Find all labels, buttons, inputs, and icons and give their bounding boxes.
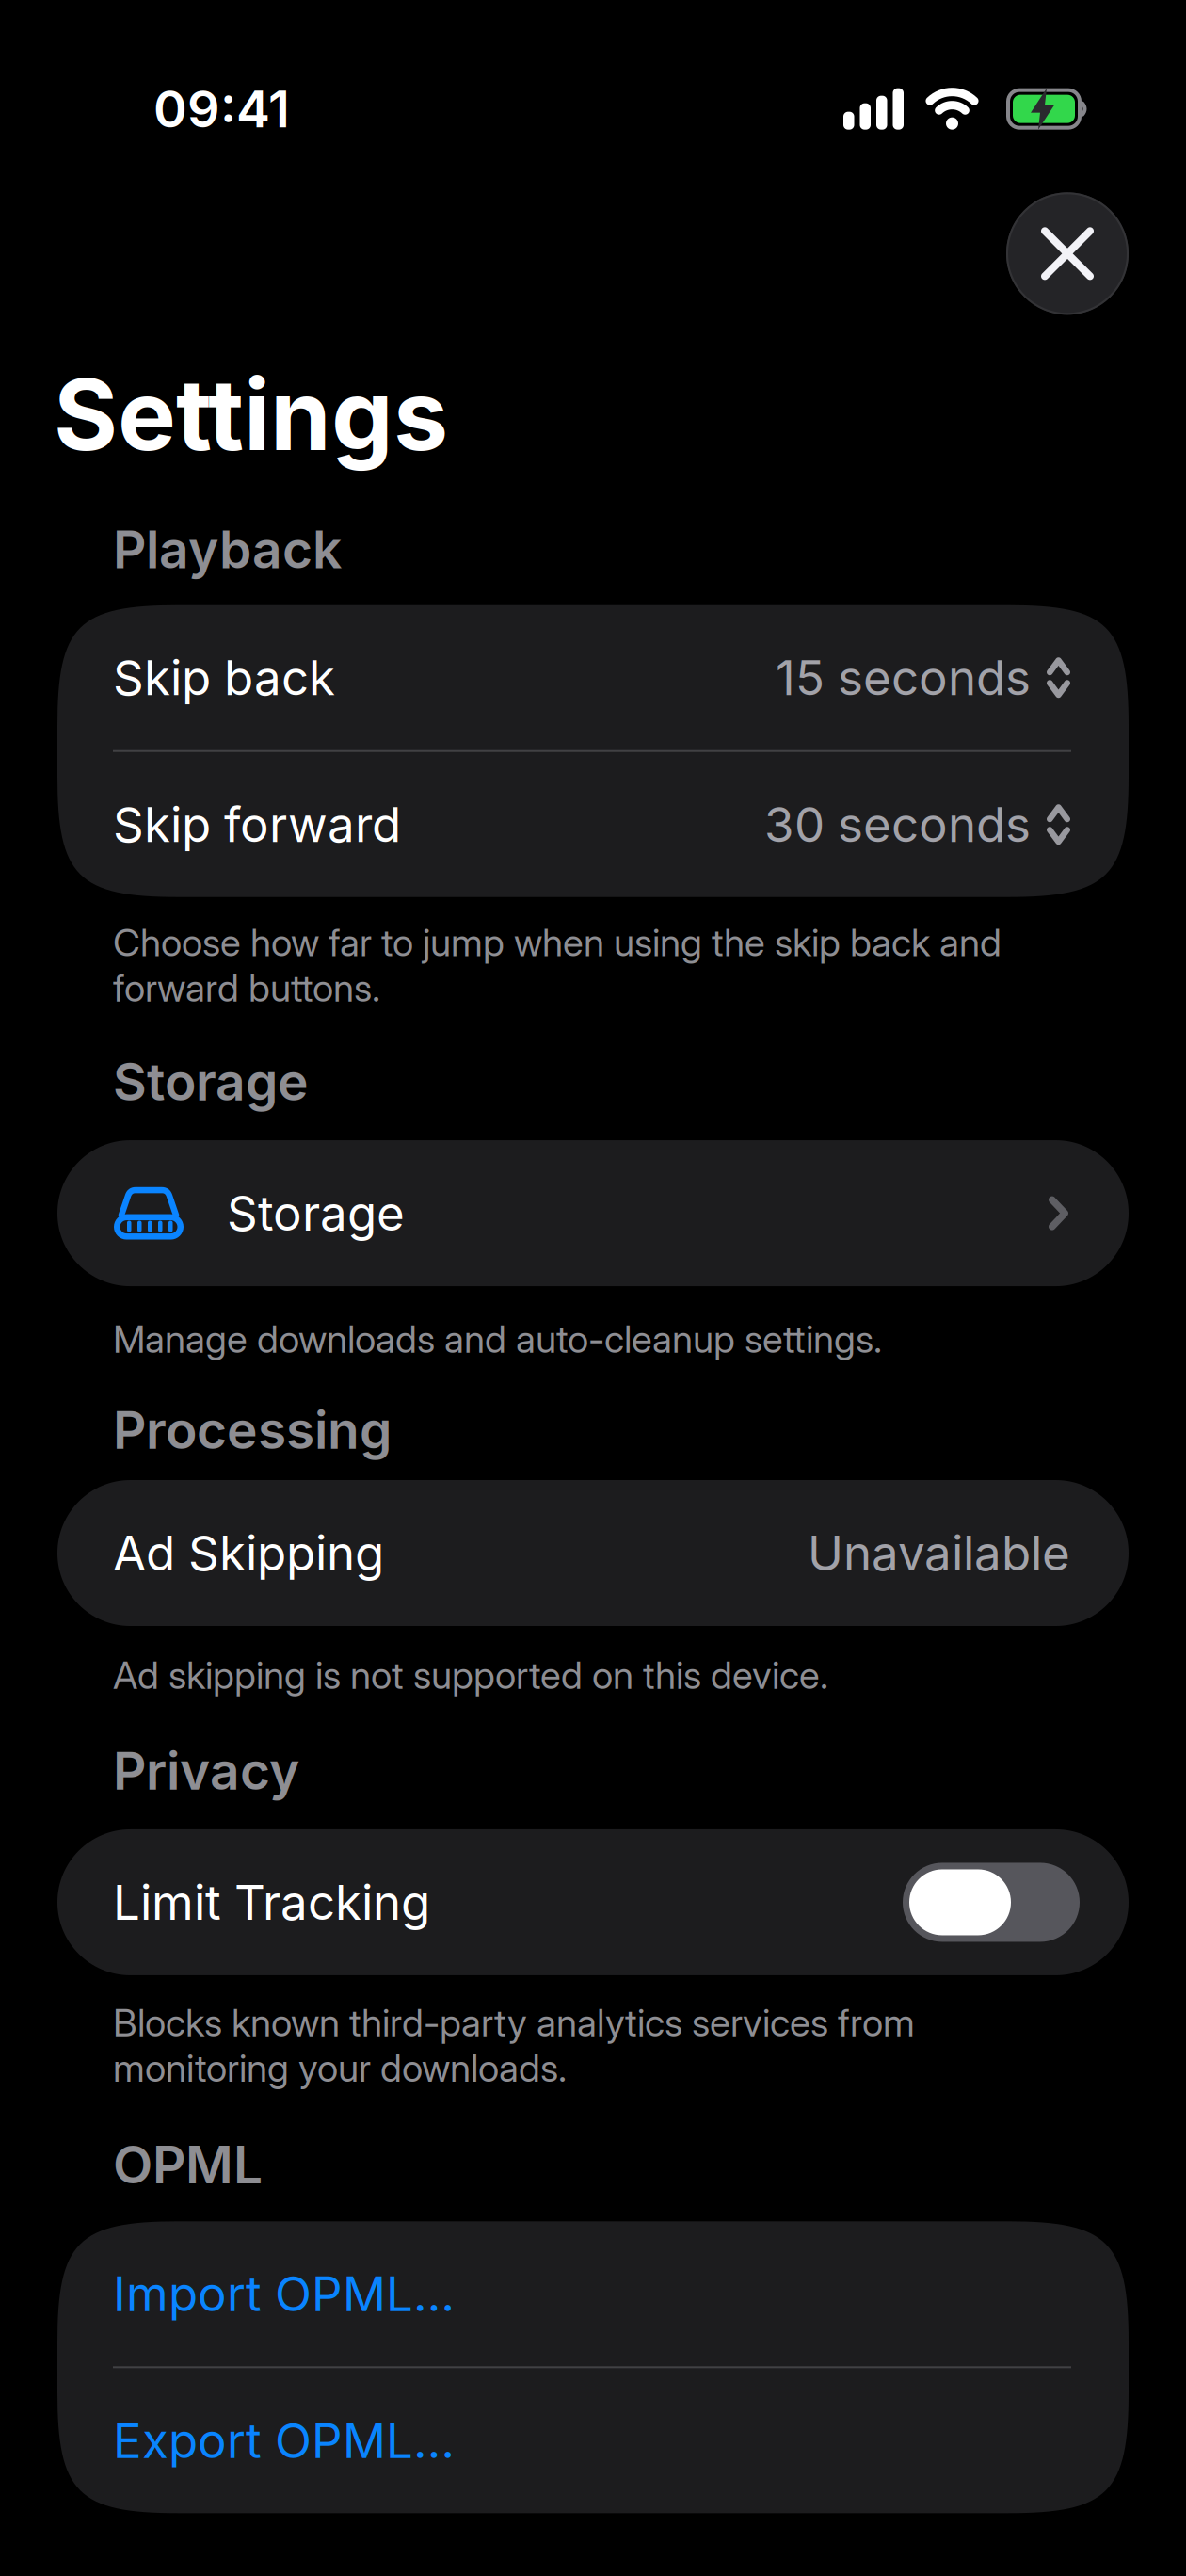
staticText: 09:41 bbox=[153, 78, 290, 140]
staticText: Manage downloads and auto-cleanup settin… bbox=[113, 1316, 882, 1362]
button[interactable]: Export OPML… bbox=[57, 2368, 1129, 2513]
staticText: Limit Tracking bbox=[113, 1873, 430, 1931]
button[interactable]: Import OPML… bbox=[57, 2221, 1129, 2366]
staticText: OPML bbox=[113, 2133, 263, 2196]
staticText: Settings bbox=[54, 355, 448, 474]
staticText: Ad Skipping bbox=[113, 1524, 384, 1582]
staticText: Unavailable bbox=[808, 1524, 1070, 1582]
button[interactable]: Skip forward bbox=[57, 752, 1129, 897]
staticText: Import OPML… bbox=[113, 2265, 455, 2323]
button[interactable]: Close bbox=[1006, 192, 1129, 315]
staticText: Processing bbox=[113, 1399, 392, 1461]
staticText: Blocks known third-party analytics servi… bbox=[113, 2000, 915, 2091]
staticText: Storage bbox=[227, 1184, 405, 1242]
staticText: 30 seconds bbox=[764, 795, 1031, 854]
button[interactable]: Limit Tracking bbox=[903, 1863, 1080, 1942]
staticText: Choose how far to jump when using the sk… bbox=[113, 920, 1002, 1011]
staticText: 15 seconds bbox=[776, 649, 1031, 707]
staticText: Skip forward bbox=[113, 795, 401, 854]
staticText: Playback bbox=[113, 518, 342, 581]
staticText: Ad skipping is not supported on this dev… bbox=[113, 1652, 828, 1698]
staticText: Skip back bbox=[113, 649, 335, 707]
staticText: Export OPML… bbox=[113, 2412, 455, 2470]
button[interactable]: Skip back bbox=[57, 605, 1129, 750]
staticText: Privacy bbox=[113, 1739, 299, 1802]
staticText: Storage bbox=[113, 1050, 309, 1113]
button[interactable]: Storage bbox=[57, 1140, 1129, 1286]
